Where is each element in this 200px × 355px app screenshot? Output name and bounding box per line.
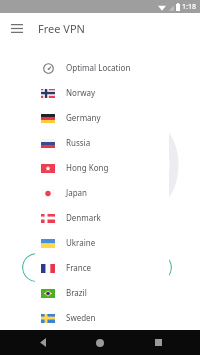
staticText: Optimal Location [66, 62, 131, 73]
button[interactable]: Japan [35, 180, 169, 205]
staticText: Sweden [66, 312, 96, 323]
staticText: Denmark [66, 212, 101, 223]
button[interactable]: Denmark [35, 205, 169, 230]
button[interactable]: Hong Kong [35, 155, 169, 180]
button[interactable]: Russia [35, 130, 169, 155]
staticText: Russia [66, 137, 91, 148]
button[interactable]: Back [28, 330, 58, 355]
button[interactable]: Norway [35, 80, 169, 105]
staticText: Japan [66, 187, 88, 198]
button[interactable]: Optimal Location [35, 55, 169, 80]
button[interactable]: Recent apps [143, 330, 173, 355]
button[interactable] [22, 253, 172, 282]
button[interactable]: France [35, 255, 169, 280]
staticText: France [66, 262, 92, 273]
staticText: Ukraine [66, 237, 96, 248]
staticText: Germany [66, 112, 101, 123]
button[interactable]: Germany [35, 105, 169, 130]
button[interactable]: Open navigation menu [5, 16, 29, 40]
button[interactable]: Home [85, 330, 115, 355]
staticText: Hong Kong [66, 162, 109, 173]
staticText: Brazil [66, 287, 87, 298]
button[interactable]: Ukraine [35, 230, 169, 255]
button[interactable]: Brazil [35, 280, 169, 305]
button[interactable]: Sweden [35, 305, 169, 330]
staticText: 1:18 [182, 2, 196, 12]
staticText: Norway [66, 87, 96, 98]
staticText: Free VPN [38, 21, 85, 36]
